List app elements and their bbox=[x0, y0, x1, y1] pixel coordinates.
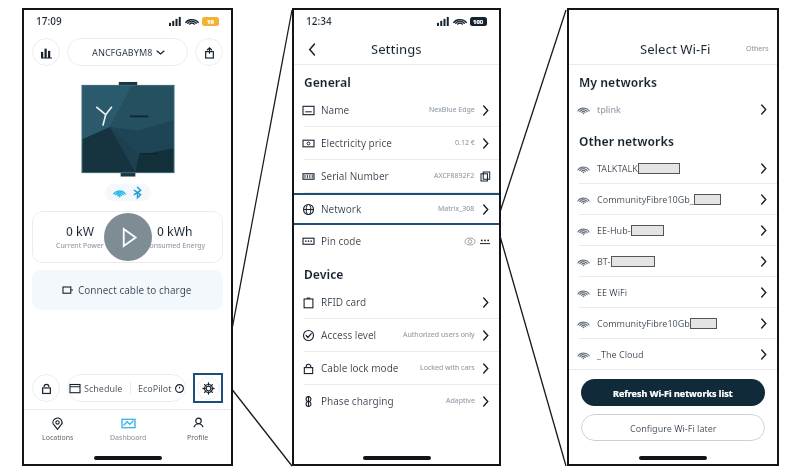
button[interactable]: Statistics bbox=[32, 38, 60, 66]
staticText: 0 kWh bbox=[157, 223, 193, 239]
staticText: AXCF8892F2 bbox=[434, 171, 475, 181]
button[interactable]: Back bbox=[302, 39, 322, 59]
staticText: Pin code bbox=[321, 234, 362, 248]
staticText: CommunityFibre10Gb bbox=[597, 317, 690, 329]
staticText: Settings bbox=[371, 40, 422, 58]
staticText: Locations bbox=[42, 433, 74, 443]
staticText: 0.12 € bbox=[455, 138, 475, 148]
button[interactable]: Network bbox=[292, 193, 501, 225]
staticText: Authorized users only bbox=[403, 330, 475, 340]
staticText: 17:09 bbox=[36, 14, 62, 28]
staticText: 0 kW bbox=[66, 223, 94, 239]
staticText: Schedule bbox=[84, 382, 123, 394]
staticText: NexBlue Edge bbox=[429, 105, 475, 115]
staticText: Dashboard bbox=[110, 433, 147, 443]
staticText: General bbox=[304, 74, 351, 90]
button[interactable]: _The Cloud bbox=[567, 339, 779, 369]
staticText: RFID card bbox=[321, 295, 367, 309]
staticText: 100 bbox=[473, 18, 484, 26]
button[interactable]: CommunityFibre10Gb bbox=[567, 308, 779, 338]
staticText: Network bbox=[321, 202, 362, 216]
staticText: My networks bbox=[579, 74, 658, 90]
button[interactable]: RFID card bbox=[292, 286, 501, 318]
button[interactable]: ANCFGABYM8 bbox=[67, 38, 188, 66]
staticText: Locked with cars bbox=[420, 363, 475, 373]
button[interactable]: CommunityFibre10Gb_ bbox=[567, 184, 779, 214]
staticText: Cable lock mode bbox=[321, 361, 399, 375]
staticText: EcoPilot bbox=[138, 382, 172, 394]
button[interactable]: Unlock bbox=[32, 374, 60, 402]
staticText: Matrix_308 bbox=[438, 204, 475, 214]
staticText: Adaptive bbox=[446, 396, 475, 406]
staticText: Serial Number bbox=[321, 169, 389, 183]
staticText: tplink bbox=[597, 103, 621, 115]
staticText: TALKTALK bbox=[597, 162, 638, 174]
button[interactable]: Configure Wi-Fi later bbox=[581, 414, 765, 441]
staticText: Name bbox=[321, 103, 350, 117]
staticText: CommunityFibre10Gb_ bbox=[597, 193, 694, 205]
staticText: Configure Wi-Fi later bbox=[630, 422, 717, 434]
staticText: Connect cable to charge bbox=[78, 283, 192, 297]
staticText: _The Cloud bbox=[597, 348, 644, 360]
staticText: 12:34 bbox=[306, 14, 332, 28]
button[interactable]: Name bbox=[292, 94, 501, 126]
staticText: Others bbox=[746, 44, 769, 54]
button[interactable]: Schedule bbox=[67, 374, 186, 402]
staticText: Other networks bbox=[579, 133, 674, 149]
staticText: EE WiFi bbox=[597, 286, 628, 298]
staticText: Access level bbox=[321, 328, 377, 342]
button[interactable]: Share bbox=[195, 38, 223, 66]
staticText: Refresh Wi-Fi networks list bbox=[613, 387, 733, 399]
button[interactable]: Electricity price bbox=[292, 127, 501, 159]
button[interactable]: BT- bbox=[567, 246, 779, 276]
button[interactable]: Serial Number bbox=[292, 160, 501, 192]
button[interactable]: EE-Hub- bbox=[567, 215, 779, 245]
button[interactable]: Refresh Wi-Fi networks list bbox=[581, 379, 765, 406]
staticText: Phase charging bbox=[321, 394, 394, 408]
button[interactable]: Access level bbox=[292, 319, 501, 351]
button[interactable]: Phase charging bbox=[292, 385, 501, 417]
staticText: Current Power bbox=[56, 241, 104, 251]
staticText: Electricity price bbox=[321, 136, 392, 150]
staticText: Consumed Energy bbox=[145, 241, 206, 251]
button[interactable]: tplink bbox=[567, 94, 779, 124]
button[interactable]: Start charging bbox=[104, 213, 152, 261]
staticText: 19 bbox=[207, 18, 214, 26]
button[interactable]: TALKTALK bbox=[567, 153, 779, 183]
button[interactable]: Locations bbox=[22, 410, 93, 450]
button[interactable]: EE WiFi bbox=[567, 277, 779, 307]
staticText: EE-Hub- bbox=[597, 224, 631, 236]
button[interactable]: 0 kWh bbox=[127, 223, 223, 251]
button[interactable]: Pin code bbox=[292, 225, 501, 257]
staticText: Profile bbox=[187, 433, 209, 443]
staticText: Select Wi-Fi bbox=[640, 40, 711, 58]
staticText: ANCFGABYM8 bbox=[92, 46, 153, 58]
staticText: BT- bbox=[597, 255, 611, 267]
button[interactable]: Others bbox=[746, 44, 769, 54]
staticText: Device bbox=[304, 266, 344, 282]
button[interactable]: Dashboard bbox=[93, 410, 163, 450]
button[interactable]: Cable lock mode bbox=[292, 352, 501, 384]
button[interactable]: Settings bbox=[193, 373, 223, 403]
button[interactable]: 0 kW bbox=[32, 223, 127, 251]
button[interactable]: Connect cable to charge bbox=[32, 270, 223, 310]
button[interactable]: Profile bbox=[163, 410, 233, 450]
